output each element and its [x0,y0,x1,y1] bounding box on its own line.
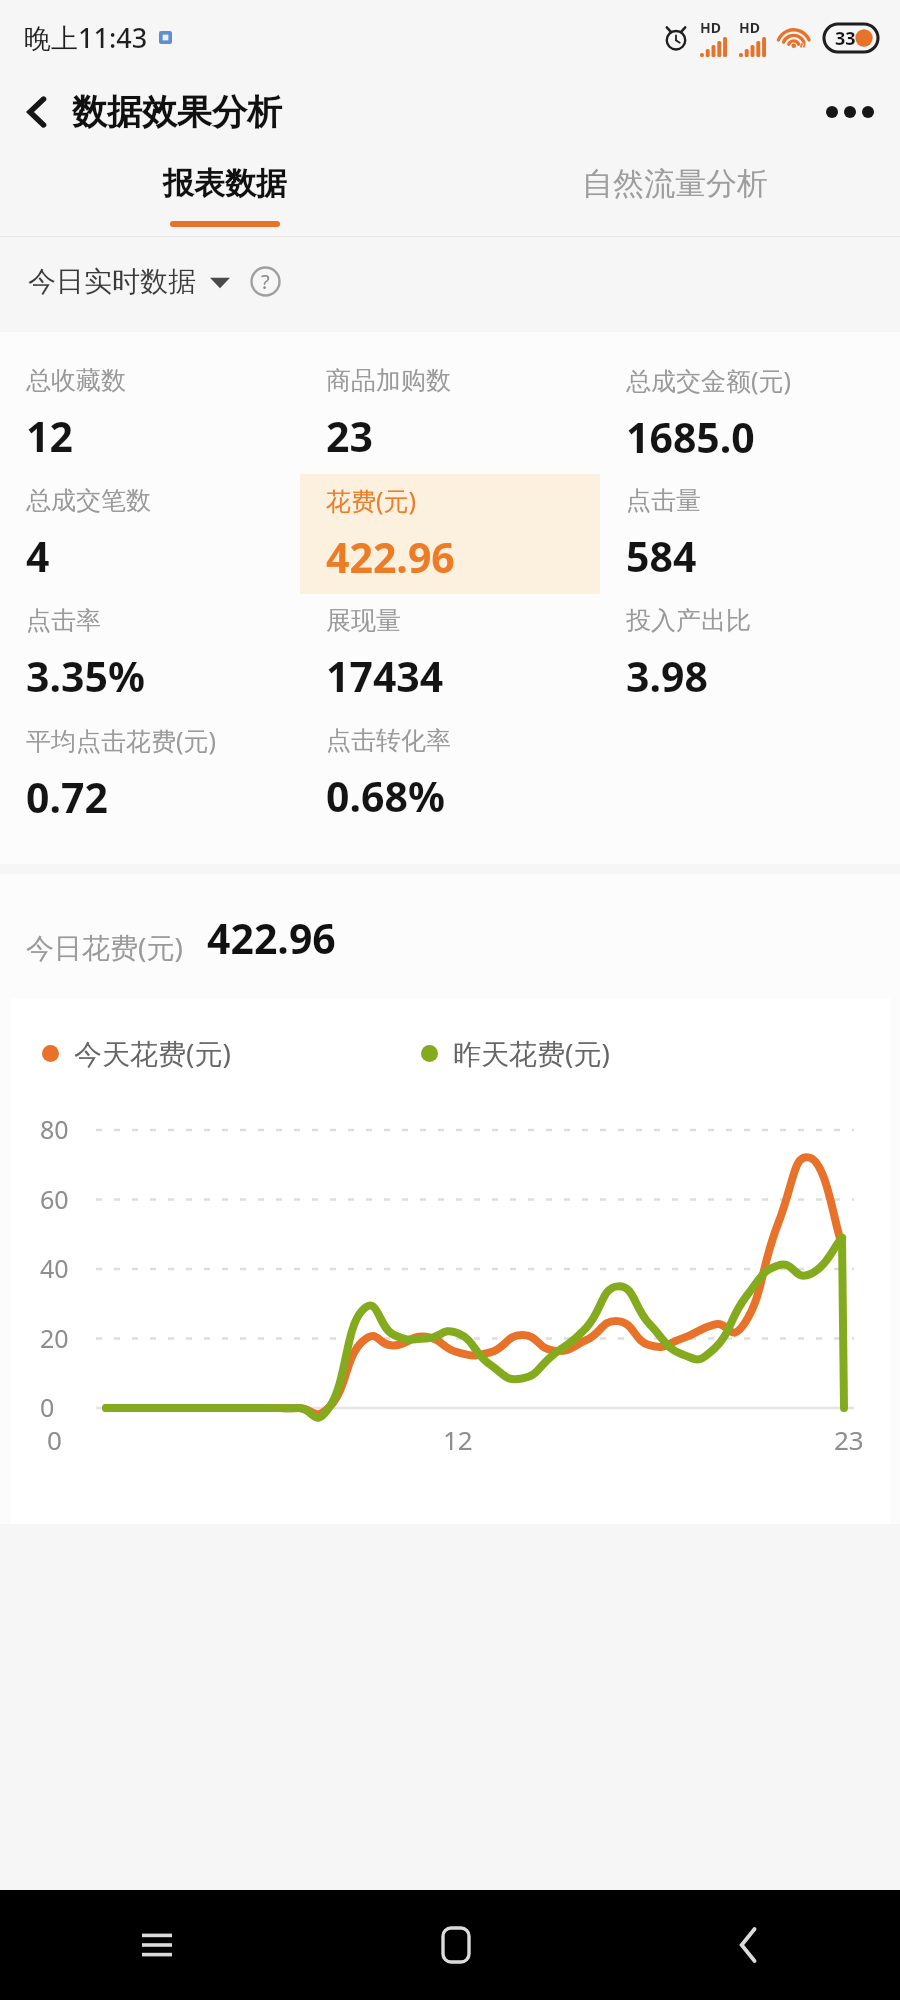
staticText: HD [700,18,721,37]
staticText: 20 [40,1321,69,1355]
staticText: 0 [40,1390,55,1424]
button[interactable]: 点击率 [0,594,300,714]
staticText: 商品加购数 [326,365,451,396]
staticText: 昨天花费(元) [453,1034,610,1072]
staticText: 报表数据 [163,164,287,203]
staticText: 点击率 [26,605,101,636]
staticText: 1685.0 [626,409,755,465]
staticText: 4 [26,528,50,584]
staticText: 80 [40,1112,69,1146]
staticText: 总成交笔数 [26,485,151,516]
other: Back [26,93,48,131]
button[interactable]: 自然流量分析 [450,150,900,236]
staticText: 12 [443,1422,473,1457]
staticText: 数据效果分析 [72,90,282,134]
staticText: 584 [626,528,697,584]
button[interactable]: 花费(元) [300,474,600,594]
button[interactable]: 投入产出比 [600,594,900,714]
button[interactable]: Back [717,1907,780,1983]
button[interactable]: More options [800,90,900,134]
button[interactable]: Help [250,266,281,297]
button[interactable]: 点击转化率 [300,714,600,834]
button[interactable]: Home [421,1906,491,1984]
staticText: 422.96 [207,910,336,966]
staticText: 23 [834,1422,864,1457]
staticText: ? [261,268,270,295]
staticText: 平均点击花费(元) [26,723,217,757]
staticText: 0.68% [326,768,445,824]
button[interactable]: 展现量 [300,594,600,714]
button[interactable]: 平均点击花费(元) [0,714,300,834]
button[interactable]: 总收藏数 [0,354,300,474]
staticText: 33 [835,26,856,51]
staticText: 3.35% [26,648,145,704]
staticText: 23 [326,408,373,464]
staticText: HD [739,18,760,37]
staticText: 今天花费(元) [74,1034,231,1072]
button[interactable]: Back [0,82,296,142]
staticText: 今日花费(元) [26,928,183,966]
staticText: 总收藏数 [26,365,126,396]
staticText: 总成交金额(元) [626,363,792,397]
staticText: 0.72 [26,769,108,825]
staticText: 晚上11:43 [24,19,148,56]
button[interactable]: 总成交笔数 [0,474,300,594]
staticText: 点击转化率 [326,725,451,756]
staticText: 展现量 [326,605,401,636]
button[interactable]: Recent apps [120,1911,194,1979]
staticText: 17434 [326,648,444,704]
staticText: 0 [47,1422,62,1457]
staticText: 3.98 [626,648,708,704]
staticText: 今日实时数据 [28,264,196,299]
staticText: 投入产出比 [626,605,751,636]
button[interactable]: 今日实时数据 [22,258,287,305]
button[interactable]: 总成交金额(元) [600,354,900,474]
staticText: 自然流量分析 [582,164,768,203]
staticText: 40 [40,1251,69,1285]
staticText: 花费(元) [326,483,417,517]
button[interactable]: 点击量 [600,474,900,594]
staticText: 422.96 [326,529,455,585]
button[interactable]: 商品加购数 [300,354,600,474]
staticText: 点击量 [626,485,701,516]
staticText: 12 [26,408,73,464]
staticText: 60 [40,1182,69,1216]
button[interactable]: 报表数据 [0,150,450,236]
